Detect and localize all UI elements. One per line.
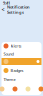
staticText: Notification Settings [7,4,30,15]
button[interactable]: Back [1,6,5,12]
staticText: Badges [10,68,23,73]
staticText: Theme [3,77,15,82]
staticText: < [1,6,4,13]
staticText: Sound [3,51,13,57]
staticText: 9:41 [3,0,10,6]
staticText: Alerts [10,43,21,49]
